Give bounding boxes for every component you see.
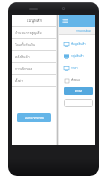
- staticText: จำนวนการสูญเสีย: [15, 30, 42, 35]
- staticText: ข้อมูลสินค้า: [71, 42, 86, 47]
- button[interactable]: ตั้งค่า: [12, 75, 56, 86]
- button[interactable]: การเบิกของ: [12, 63, 56, 74]
- button[interactable]: [64, 99, 93, 107]
- button[interactable]: เมนูหลัก: [12, 15, 56, 26]
- staticText: การเบิกของ: [15, 66, 33, 71]
- button[interactable]: ออกจากระบบ: [17, 113, 51, 122]
- button[interactable]: ทั้งหมด: [65, 77, 95, 84]
- button[interactable]: Menu: [61, 17, 69, 25]
- staticText: คลังสินค้า: [15, 54, 30, 59]
- staticText: รายละเอียด: [76, 29, 92, 34]
- button[interactable]: ราคา: [64, 65, 95, 72]
- staticText: กลุ่มสินค้า: [71, 54, 84, 59]
- staticText: ใบเสร็จรับเงิน: [15, 42, 35, 47]
- staticText: ราคา: [71, 66, 78, 71]
- button[interactable]: ใบเสร็จรับเงิน: [12, 39, 56, 50]
- button[interactable]: กลุ่มสินค้า: [64, 53, 95, 60]
- staticText: ทั้งหมด: [71, 78, 81, 83]
- staticText: ออกจากระบบ: [25, 115, 44, 120]
- button[interactable]: จำนวนการสูญเสีย: [12, 27, 56, 38]
- staticText: ตั้งค่า: [15, 78, 24, 83]
- button[interactable]: คลังสินค้า: [12, 51, 56, 62]
- button[interactable]: ตกลง: [64, 87, 93, 95]
- staticText: ตกลง: [75, 89, 83, 94]
- button[interactable]: ข้อมูลสินค้า: [64, 41, 95, 48]
- staticText: เมนูหลัก: [27, 17, 42, 24]
